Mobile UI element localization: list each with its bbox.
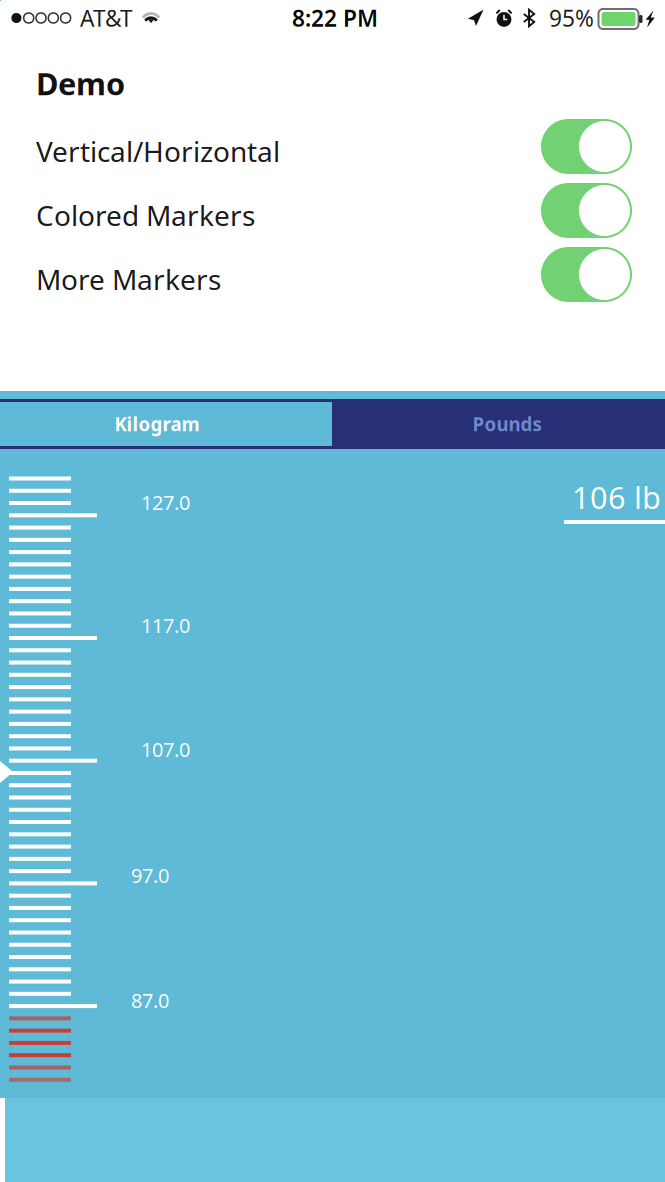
staticText: 107.0 xyxy=(141,736,190,763)
button[interactable]: Pounds xyxy=(332,399,665,449)
staticText: AT&T xyxy=(80,3,133,33)
button[interactable]: Vertical/Horizontal xyxy=(0,114,665,178)
staticText: Vertical/Horizontal xyxy=(36,132,280,170)
button[interactable]: More Markers xyxy=(0,242,665,306)
staticText: More Markers xyxy=(36,260,221,298)
staticText: 127.0 xyxy=(141,489,190,516)
staticText: Demo xyxy=(36,63,125,104)
staticText: 106 lb xyxy=(572,477,661,517)
staticText: Kilogram xyxy=(114,412,199,436)
button[interactable]: Toggle xyxy=(541,183,632,238)
button[interactable]: Toggle xyxy=(541,247,632,302)
button[interactable]: Toggle xyxy=(541,119,632,174)
staticText: 8:22 PM xyxy=(292,3,378,33)
staticText: 97.0 xyxy=(131,862,169,889)
staticText: Pounds xyxy=(472,412,541,436)
button[interactable]: Colored Markers xyxy=(0,178,665,242)
staticText: 95% xyxy=(549,3,594,33)
staticText: 117.0 xyxy=(141,612,190,639)
button[interactable]: Kilogram xyxy=(0,399,332,449)
staticText: Colored Markers xyxy=(36,196,255,234)
staticText: 87.0 xyxy=(131,987,169,1014)
